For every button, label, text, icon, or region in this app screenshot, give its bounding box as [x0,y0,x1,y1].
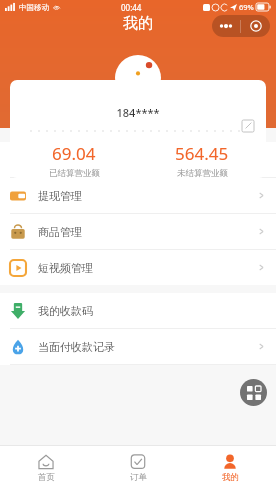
staticText: 我的 [222,472,239,483]
button[interactable]: 提现管理 [0,178,276,213]
staticText: 564.45 [175,142,229,165]
button[interactable]: 首页 [0,446,92,490]
staticText: 69.04 [52,142,96,165]
staticText: 未结算营业额 [177,168,228,178]
button[interactable]: 商品管理 [0,214,276,249]
staticText: 当面付收款记录 [38,340,115,354]
button[interactable]: Scan QR code [240,379,267,406]
button[interactable]: Edit [240,118,256,134]
button[interactable]: 我的收款码 [0,293,276,328]
staticText: 商品管理 [38,225,82,239]
button[interactable]: 我的 [184,446,276,490]
staticText: 00:44 [121,2,142,13]
staticText: 我的 [123,14,153,33]
button[interactable]: 当面付收款记录 [0,329,276,364]
button[interactable]: 经营数据 [0,142,276,177]
staticText: 中国移动 [19,3,49,12]
staticText: 184**** [10,105,266,120]
staticText: 已结算营业额 [49,168,100,178]
staticText: 69% [239,2,254,12]
staticText: 提现管理 [38,189,82,203]
button[interactable]: 订单 [92,446,184,490]
button[interactable]: 短视频管理 [0,250,276,285]
staticText: 短视频管理 [38,261,93,275]
staticText: 我的收款码 [38,304,93,318]
staticText: 首页 [38,472,55,483]
button[interactable]: Mini program menu [212,15,270,37]
staticText: 经营数据 [38,153,82,167]
staticText: 订单 [130,472,147,483]
